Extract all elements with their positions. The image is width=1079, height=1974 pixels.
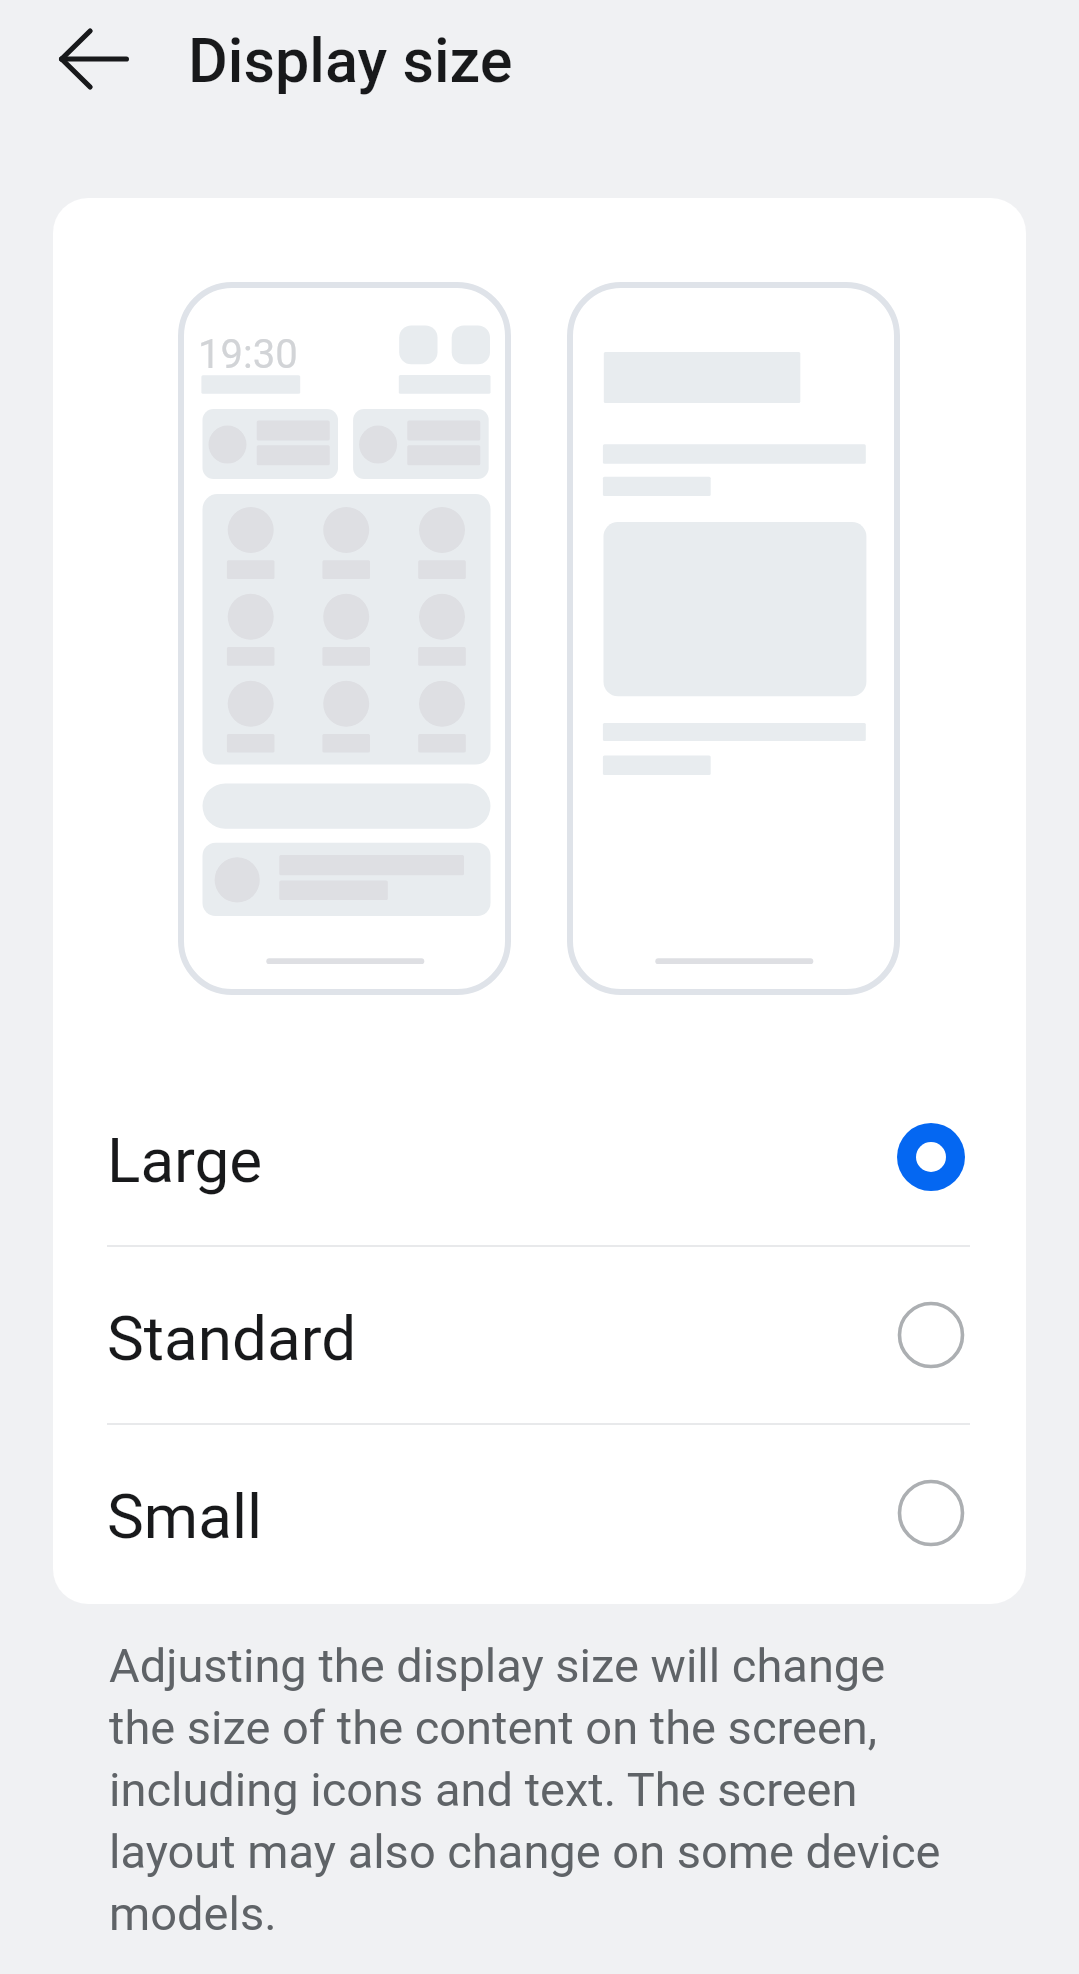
button[interactable]: Large [53,1069,1026,1245]
button[interactable]: Standard [53,1247,1026,1423]
staticText: Standard [107,1302,357,1375]
staticText: 19:30 [198,331,298,378]
staticText: Small [107,1480,263,1553]
button[interactable]: Small [53,1425,1026,1601]
staticText: Adjusting the display size will change t… [109,1638,947,1942]
button[interactable]: Back [26,17,162,101]
staticText: Large [107,1124,263,1197]
staticText: Display size [188,25,513,96]
